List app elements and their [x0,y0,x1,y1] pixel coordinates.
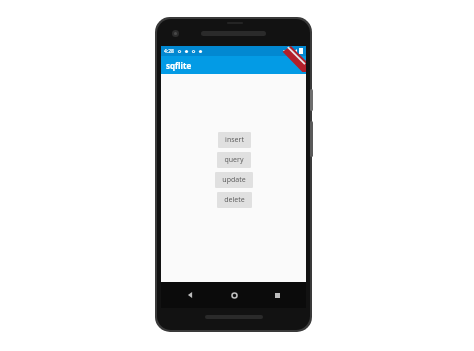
staticText: update [222,175,246,185]
staticText: delete [224,195,245,205]
button[interactable]: query [217,152,251,168]
button[interactable]: insert [218,132,251,148]
button[interactable]: delete [217,192,252,208]
staticText: query [224,155,244,165]
button[interactable]: Recent apps [262,282,292,308]
button[interactable]: update [215,172,253,188]
staticText: 4:28 [164,48,174,55]
staticText: sqflite [166,60,192,71]
button[interactable]: Back [175,282,205,308]
staticText: insert [225,135,244,145]
button[interactable]: Home [219,282,249,308]
